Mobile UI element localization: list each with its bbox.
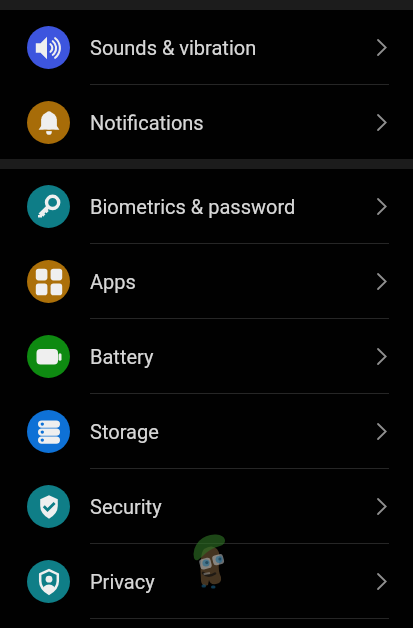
button[interactable]: Biometrics & password bbox=[0, 169, 413, 244]
staticText: Privacy bbox=[90, 570, 155, 593]
staticText: Apps bbox=[90, 270, 136, 293]
button[interactable]: Battery bbox=[0, 319, 413, 394]
button[interactable]: Sounds & vibration bbox=[0, 10, 413, 85]
staticText: Sounds & vibration bbox=[90, 36, 257, 59]
staticText: Security bbox=[90, 495, 162, 518]
button[interactable]: Privacy bbox=[0, 544, 413, 619]
button[interactable]: Apps bbox=[0, 244, 413, 319]
staticText: Notifications bbox=[90, 111, 204, 134]
button[interactable]: Storage bbox=[0, 394, 413, 469]
button[interactable]: Notifications bbox=[0, 85, 413, 159]
staticText: Storage bbox=[90, 420, 159, 443]
button[interactable]: Security bbox=[0, 469, 413, 544]
staticText: Biometrics & password bbox=[90, 195, 296, 218]
staticText: Battery bbox=[90, 345, 154, 368]
